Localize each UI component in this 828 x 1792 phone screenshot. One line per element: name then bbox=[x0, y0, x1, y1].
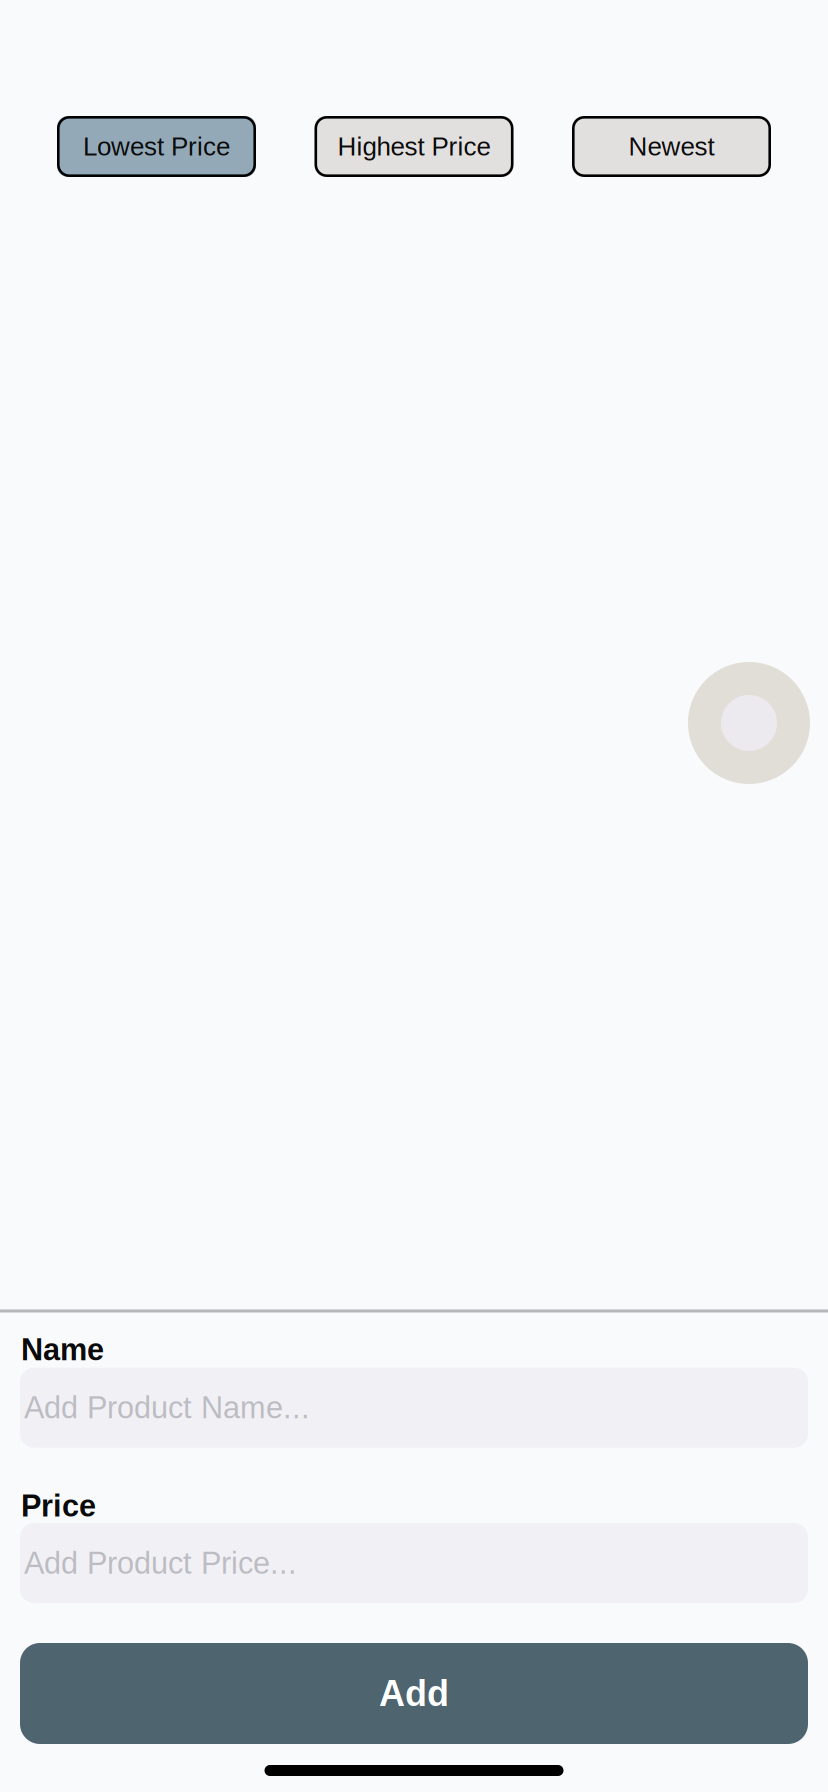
staticText: Price bbox=[21, 1489, 96, 1523]
button[interactable]: Newest bbox=[572, 116, 771, 177]
staticText: Add Product Price... bbox=[24, 1546, 297, 1580]
button[interactable]: Add Product Price... bbox=[20, 1523, 808, 1603]
button[interactable]: Add bbox=[20, 1643, 808, 1744]
staticText: Add bbox=[379, 1673, 449, 1714]
staticText: Newest bbox=[628, 132, 714, 161]
staticText: Highest Price bbox=[337, 132, 490, 161]
button[interactable]: Highest Price bbox=[314, 116, 513, 177]
staticText: Name bbox=[21, 1332, 104, 1367]
button[interactable]: Lowest Price bbox=[57, 116, 256, 177]
button[interactable]: Add Product Name... bbox=[20, 1368, 808, 1448]
staticText: Add Product Name... bbox=[24, 1391, 310, 1425]
staticText: Lowest Price bbox=[83, 132, 230, 161]
